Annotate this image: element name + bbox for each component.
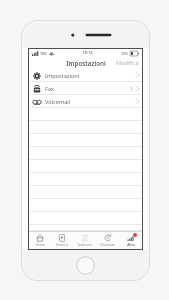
button[interactable]: Modifica xyxy=(116,59,139,67)
staticText: 18:12 xyxy=(82,50,93,56)
staticText: Tastierino xyxy=(77,243,92,247)
button[interactable]: Home xyxy=(29,232,51,249)
staticText: Voicemail xyxy=(45,98,71,106)
button[interactable]: Chiamate xyxy=(96,232,119,249)
staticText: TIM xyxy=(40,51,47,56)
button[interactable]: Impostazioni xyxy=(29,69,142,82)
staticText: Modifica xyxy=(116,59,139,67)
button[interactable]: Rubrica xyxy=(51,232,73,249)
staticText: 1 xyxy=(130,85,133,92)
staticText: 33% xyxy=(121,51,129,56)
staticText: Impostazioni xyxy=(45,72,80,80)
staticText: Altro xyxy=(127,243,135,247)
button[interactable]: Tastierino xyxy=(73,232,96,249)
staticText: Home xyxy=(35,243,45,247)
button[interactable]: Altro xyxy=(119,232,142,249)
button[interactable]: Fax xyxy=(29,82,142,95)
staticText: Fax xyxy=(45,85,55,93)
button[interactable]: Voicemail xyxy=(29,95,142,108)
button[interactable]: Home button xyxy=(76,256,95,275)
staticText: Impostazioni xyxy=(66,59,106,67)
staticText: Chiamate xyxy=(100,243,115,247)
staticText: Rubrica xyxy=(56,243,68,247)
